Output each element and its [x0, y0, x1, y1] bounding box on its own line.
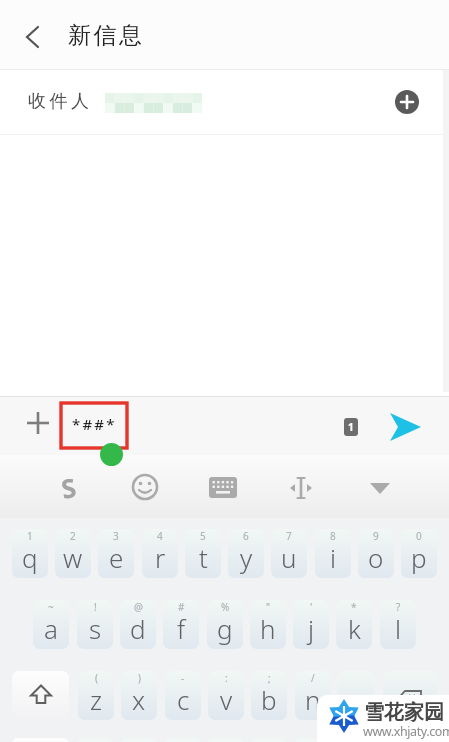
staticText: 2: [70, 529, 76, 543]
staticText: ): [138, 671, 141, 685]
button[interactable]: [131, 473, 159, 501]
staticText: 5: [200, 529, 206, 543]
staticText: -: [181, 671, 185, 685]
button[interactable]: [26, 411, 50, 435]
staticText: 0: [416, 529, 422, 543]
staticText: h: [260, 611, 276, 646]
staticText: 新信息: [68, 21, 145, 50]
staticText: t: [199, 540, 208, 575]
staticText: a: [44, 611, 58, 646]
button[interactable]: 5: [185, 529, 221, 578]
staticText: j: [308, 611, 315, 646]
button[interactable]: [12, 671, 69, 719]
staticText: c: [177, 682, 190, 717]
button[interactable]: (: [78, 671, 114, 720]
button[interactable]: [395, 90, 419, 114]
staticText: 8: [330, 529, 336, 543]
button[interactable]: ): [121, 671, 157, 720]
button[interactable]: S: [52, 470, 84, 502]
staticText: ': [310, 600, 313, 614]
staticText: r: [155, 540, 166, 575]
staticText: e: [109, 540, 124, 575]
button[interactable]: [209, 477, 237, 498]
staticText: %: [221, 600, 230, 614]
staticText: #: [178, 600, 185, 614]
staticText: q: [22, 540, 38, 575]
button[interactable]: -: [165, 671, 201, 720]
staticText: *: [351, 600, 357, 614]
button[interactable]: 9: [358, 529, 394, 578]
button[interactable]: [0, 70, 449, 135]
staticText: 9: [373, 529, 379, 543]
staticText: 1: [348, 420, 354, 434]
button[interactable]: [386, 408, 424, 446]
button[interactable]: [369, 481, 391, 497]
staticText: ": [266, 600, 271, 614]
staticText: (: [95, 671, 98, 685]
staticText: v: [220, 682, 233, 717]
staticText: 1: [27, 529, 33, 543]
staticText: *##*: [72, 414, 117, 434]
staticText: @: [134, 600, 143, 614]
staticText: :: [225, 671, 228, 685]
staticText: l: [395, 611, 402, 646]
button[interactable]: 1: [12, 529, 48, 578]
staticText: ~: [48, 600, 54, 614]
button[interactable]: :: [208, 671, 244, 720]
button[interactable]: /: [295, 671, 331, 720]
button[interactable]: 6: [228, 529, 264, 578]
button[interactable]: [383, 671, 437, 719]
staticText: y: [240, 540, 253, 575]
staticText: !: [94, 600, 97, 614]
staticText: 收件人: [28, 90, 93, 113]
button[interactable]: 2: [55, 529, 91, 578]
button[interactable]: ~: [33, 600, 69, 649]
staticText: p: [411, 540, 427, 575]
button[interactable]: @: [120, 600, 156, 649]
staticText: www.xhjaty.com: [363, 723, 449, 740]
button[interactable]: 3: [98, 529, 134, 578]
staticText: S: [58, 469, 79, 503]
staticText: ;: [268, 671, 271, 685]
button[interactable]: %: [207, 600, 243, 649]
button[interactable]: m: [338, 671, 374, 720]
staticText: 6: [243, 529, 249, 543]
button[interactable]: [20, 23, 48, 51]
button[interactable]: ": [250, 600, 286, 649]
staticText: 雪花家园: [364, 700, 444, 725]
staticText: u: [281, 540, 297, 575]
staticText: s: [89, 611, 102, 646]
staticText: d: [130, 611, 146, 646]
staticText: z: [90, 682, 103, 717]
button[interactable]: 7: [271, 529, 307, 578]
staticText: f: [177, 611, 186, 646]
staticText: /: [311, 671, 315, 685]
staticText: b: [261, 682, 277, 717]
staticText: i: [330, 540, 337, 575]
staticText: 7: [286, 529, 292, 543]
staticText: ?: [396, 600, 401, 614]
button[interactable]: 8: [315, 529, 351, 578]
button[interactable]: [288, 476, 314, 500]
staticText: o: [368, 540, 384, 575]
staticText: x: [132, 682, 146, 717]
button[interactable]: !: [77, 600, 113, 649]
button[interactable]: #: [163, 600, 199, 649]
button[interactable]: ;: [251, 671, 287, 720]
staticText: m: [344, 682, 368, 717]
staticText: n: [305, 682, 321, 717]
button[interactable]: 4: [142, 529, 178, 578]
button[interactable]: ?: [380, 600, 416, 649]
staticText: k: [348, 611, 361, 646]
staticText: g: [217, 611, 233, 646]
button[interactable]: *: [336, 600, 372, 649]
staticText: 3: [113, 529, 119, 543]
staticText: w: [63, 540, 83, 575]
button[interactable]: 0: [401, 529, 437, 578]
staticText: 4: [157, 529, 163, 543]
button[interactable]: ': [293, 600, 329, 649]
